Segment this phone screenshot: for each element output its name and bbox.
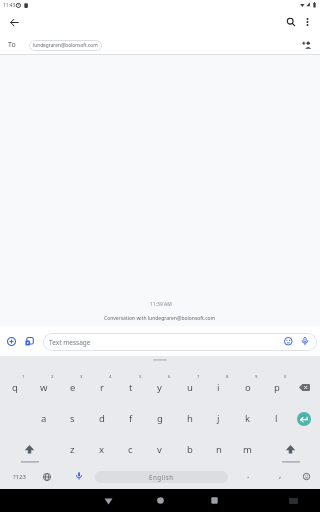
button[interactable]	[25, 337, 34, 346]
button[interactable]: .	[240, 466, 256, 484]
button[interactable]: s	[58, 409, 87, 427]
button[interactable]: b	[175, 440, 204, 458]
staticText: lundegraren@bolonsoft.com	[33, 42, 98, 49]
button[interactable]: y	[145, 378, 174, 396]
button[interactable]	[289, 498, 299, 505]
staticText: Text message	[49, 338, 91, 347]
staticText: 5	[139, 374, 142, 380]
staticText: v	[157, 443, 162, 456]
staticText: Conversation with lundegraren@bolonsoft.…	[104, 315, 216, 322]
button[interactable]: g	[145, 409, 174, 427]
button[interactable]	[297, 412, 311, 426]
button[interactable]: English	[95, 471, 228, 483]
staticText: p	[274, 381, 280, 394]
button[interactable]: m	[233, 440, 262, 458]
button[interactable]: l	[262, 409, 291, 427]
button[interactable]: d	[87, 409, 116, 427]
button[interactable]: r	[87, 378, 116, 396]
staticText: w	[40, 381, 48, 394]
button[interactable]: f	[116, 409, 145, 427]
staticText: 9	[255, 374, 258, 380]
staticText: b	[187, 443, 193, 456]
staticText: o	[245, 381, 251, 394]
staticText: c	[128, 443, 133, 456]
button[interactable]	[104, 498, 113, 505]
button[interactable]: p	[262, 378, 291, 396]
staticText: i	[217, 381, 220, 394]
staticText: u	[187, 381, 193, 394]
button[interactable]: c	[116, 440, 145, 458]
staticText: 6	[168, 374, 171, 380]
button[interactable]	[301, 337, 309, 347]
staticText: y	[157, 381, 162, 394]
button[interactable]: a	[29, 409, 58, 427]
staticText: 1	[22, 374, 25, 380]
button[interactable]	[10, 18, 19, 27]
staticText: t	[129, 381, 133, 394]
staticText: a	[41, 412, 47, 425]
staticText: 11:43	[3, 2, 16, 9]
staticText: j	[217, 412, 220, 425]
staticText: x	[99, 443, 105, 456]
staticText: z	[70, 443, 75, 456]
button[interactable]	[75, 472, 83, 481]
button[interactable]: z	[58, 440, 87, 458]
staticText: n	[216, 443, 222, 456]
button[interactable]: x	[87, 440, 116, 458]
button[interactable]	[43, 333, 317, 351]
staticText: 8	[226, 374, 229, 380]
staticText: m	[243, 443, 252, 456]
staticText: k	[245, 412, 251, 425]
staticText: .	[247, 469, 250, 481]
staticText: f	[129, 412, 133, 425]
button[interactable]	[284, 337, 293, 346]
button[interactable]: q	[0, 378, 29, 396]
button[interactable]	[211, 497, 218, 504]
staticText: e	[70, 381, 76, 394]
button[interactable]: lundegraren@bolonsoft.com	[29, 40, 102, 51]
staticText: q	[12, 381, 18, 394]
staticText: d	[99, 412, 105, 425]
button[interactable]	[24, 444, 35, 455]
button[interactable]: o	[233, 378, 262, 396]
button[interactable]: i	[204, 378, 233, 396]
button[interactable]: v	[145, 440, 174, 458]
button[interactable]: h	[175, 409, 204, 427]
button[interactable]	[157, 497, 164, 504]
staticText: h	[187, 412, 193, 425]
button[interactable]: ?123	[4, 468, 34, 486]
button[interactable]: u	[175, 378, 204, 396]
button[interactable]	[285, 444, 296, 455]
staticText: 0	[284, 374, 287, 380]
staticText: s	[70, 412, 75, 425]
button[interactable]	[303, 17, 312, 27]
staticText: l	[275, 412, 278, 425]
staticText: 2	[51, 374, 54, 380]
staticText: ?123	[13, 473, 26, 481]
button[interactable]	[7, 337, 16, 346]
button[interactable]	[298, 383, 312, 392]
button[interactable]: ,	[272, 466, 288, 484]
button[interactable]	[43, 473, 51, 481]
button[interactable]: e	[58, 378, 87, 396]
staticText: ,	[279, 469, 282, 481]
staticText: 4	[109, 374, 112, 380]
button[interactable]: k	[233, 409, 262, 427]
button[interactable]	[302, 40, 313, 51]
button[interactable]: w	[29, 378, 58, 396]
staticText: 11:39 AM	[150, 301, 172, 308]
staticText: 3	[80, 374, 83, 380]
staticText: To	[8, 40, 16, 50]
button[interactable]	[303, 473, 310, 480]
staticText: r	[100, 381, 104, 394]
button[interactable]: t	[116, 378, 145, 396]
button[interactable]	[286, 17, 296, 27]
staticText: 7	[197, 374, 200, 380]
staticText: g	[157, 412, 163, 425]
button[interactable]: j	[204, 409, 233, 427]
staticText: English	[149, 473, 174, 481]
button[interactable]: n	[204, 440, 233, 458]
